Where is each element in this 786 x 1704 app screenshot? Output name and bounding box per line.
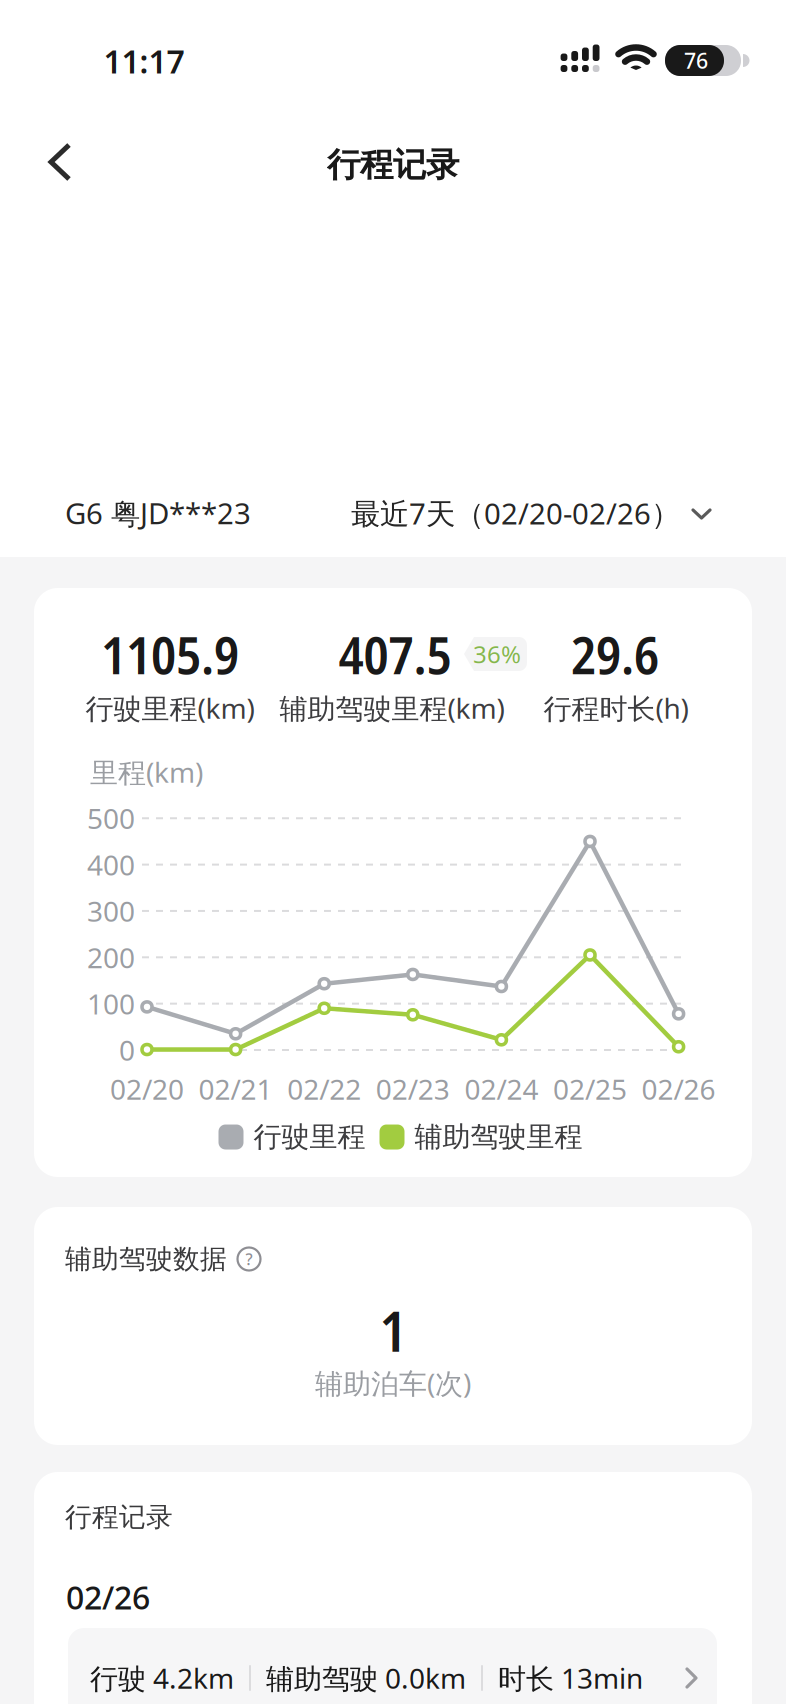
staticText: 时长 13min (498, 1659, 643, 1697)
staticText: 1 (379, 1292, 406, 1368)
staticText: 0 (119, 1031, 135, 1069)
button[interactable]: G6 粤JD***23 (65, 493, 365, 532)
staticText: 行程记录 (327, 144, 459, 185)
staticText: 辅助驾驶 0.0km (266, 1659, 466, 1697)
staticText: 最近7天（02/20-02/26） (351, 493, 680, 532)
staticText: 02/21 (199, 1070, 273, 1108)
staticText: 02/26 (642, 1070, 716, 1108)
staticText: 1105.9 (101, 619, 239, 689)
button[interactable]: 行驶 4.2km (68, 1628, 717, 1704)
staticText: 辅助泊车(次) (315, 1364, 471, 1402)
staticText: 200 (87, 939, 135, 976)
staticText: 辅助驾驶里程(km) (279, 689, 504, 727)
staticText: 02/24 (464, 1070, 538, 1108)
staticText: 11:17 (103, 40, 184, 82)
button[interactable]: 最近7天（02/20-02/26） (296, 493, 716, 532)
staticText: 辅助驾驶里程 (414, 1120, 582, 1154)
staticText: 407.5 (338, 619, 451, 689)
staticText: 29.6 (571, 619, 659, 689)
staticText: 02/23 (376, 1070, 450, 1108)
staticText: 500 (87, 800, 135, 837)
button[interactable]: Back (37, 137, 87, 187)
button[interactable]: Help (236, 1246, 262, 1272)
staticText: 行程记录 (65, 1501, 173, 1533)
staticText: 400 (87, 846, 135, 883)
staticText: ? (245, 1248, 252, 1270)
staticText: 76 (684, 46, 708, 75)
staticText: 02/25 (553, 1070, 627, 1108)
staticText: 300 (87, 892, 135, 930)
staticText: 36% (473, 638, 521, 670)
staticText: 02/22 (287, 1070, 361, 1108)
staticText: 行程时长(h) (543, 689, 688, 727)
staticText: 100 (87, 985, 135, 1022)
staticText: 02/26 (66, 1576, 150, 1618)
staticText: 02/20 (110, 1070, 184, 1108)
staticText: 辅助驾驶数据 (65, 1243, 227, 1275)
staticText: G6 粤JD***23 (65, 493, 251, 532)
staticText: 行驶 4.2km (90, 1659, 234, 1697)
staticText: 里程(km) (90, 753, 203, 791)
staticText: 行驶里程 (253, 1120, 365, 1154)
staticText: 行驶里程(km) (85, 689, 254, 727)
